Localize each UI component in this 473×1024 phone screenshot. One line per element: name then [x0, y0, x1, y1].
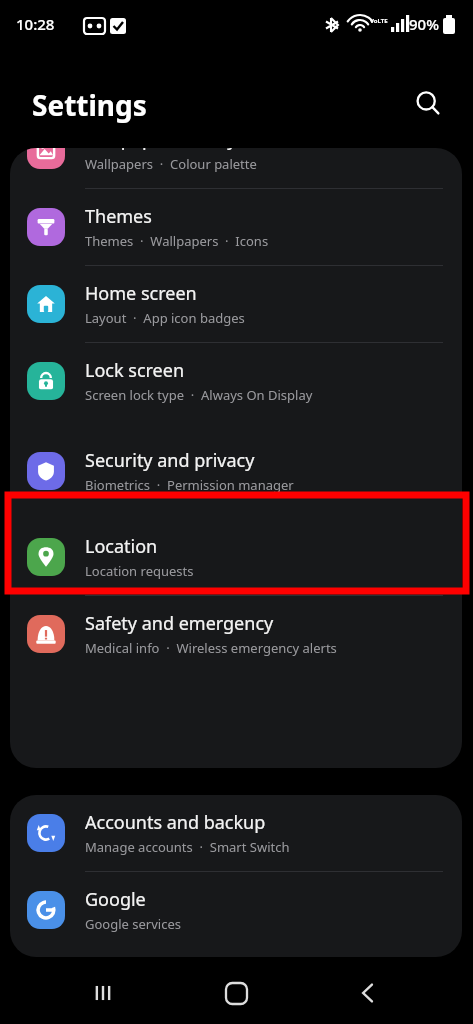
button[interactable]: Security and privacy — [10, 433, 462, 509]
staticText: Screen lock type · Always On Display — [85, 386, 313, 404]
staticText: Safety and emergency — [85, 611, 274, 636]
staticText: Wallpapers · Colour palette — [85, 155, 257, 173]
staticText: Home screen — [85, 281, 197, 306]
button[interactable]: Safety and emergency — [10, 596, 462, 672]
staticText: Biometrics · Permission manager — [85, 476, 294, 494]
staticText: 10:28 — [16, 14, 55, 34]
staticText: Google services — [85, 915, 181, 933]
staticText: Medical info · Wireless emergency alerts — [85, 639, 337, 657]
button[interactable]: Back — [343, 968, 393, 1018]
staticText: Security and privacy — [85, 448, 255, 473]
staticText: Wallpaper and style — [85, 148, 252, 152]
staticText: Location — [85, 534, 158, 559]
staticText: 90% — [409, 14, 439, 34]
staticText: Accounts and backup — [85, 810, 266, 835]
button[interactable]: Wallpaper and style — [10, 148, 462, 188]
button[interactable]: Location — [10, 519, 462, 595]
button[interactable]: Home screen — [10, 266, 462, 342]
staticText: Location requests — [85, 562, 194, 580]
button[interactable]: Accounts and backup — [10, 795, 462, 871]
button[interactable]: Home — [211, 968, 261, 1018]
button[interactable]: Themes — [10, 189, 462, 265]
staticText: Google — [85, 887, 146, 912]
button[interactable]: Search — [405, 80, 451, 126]
staticText: Themes · Wallpapers · Icons — [85, 232, 269, 250]
staticText: Lock screen — [85, 358, 185, 383]
button[interactable]: Google — [10, 872, 462, 948]
staticText: Manage accounts · Smart Switch — [85, 838, 290, 856]
staticText: Settings — [32, 86, 147, 124]
button[interactable]: Lock screen — [10, 343, 462, 419]
staticText: Layout · App icon badges — [85, 309, 245, 327]
staticText: Themes — [85, 204, 152, 229]
staticText: VoLTE — [370, 17, 388, 25]
button[interactable]: Recent apps — [78, 968, 128, 1018]
